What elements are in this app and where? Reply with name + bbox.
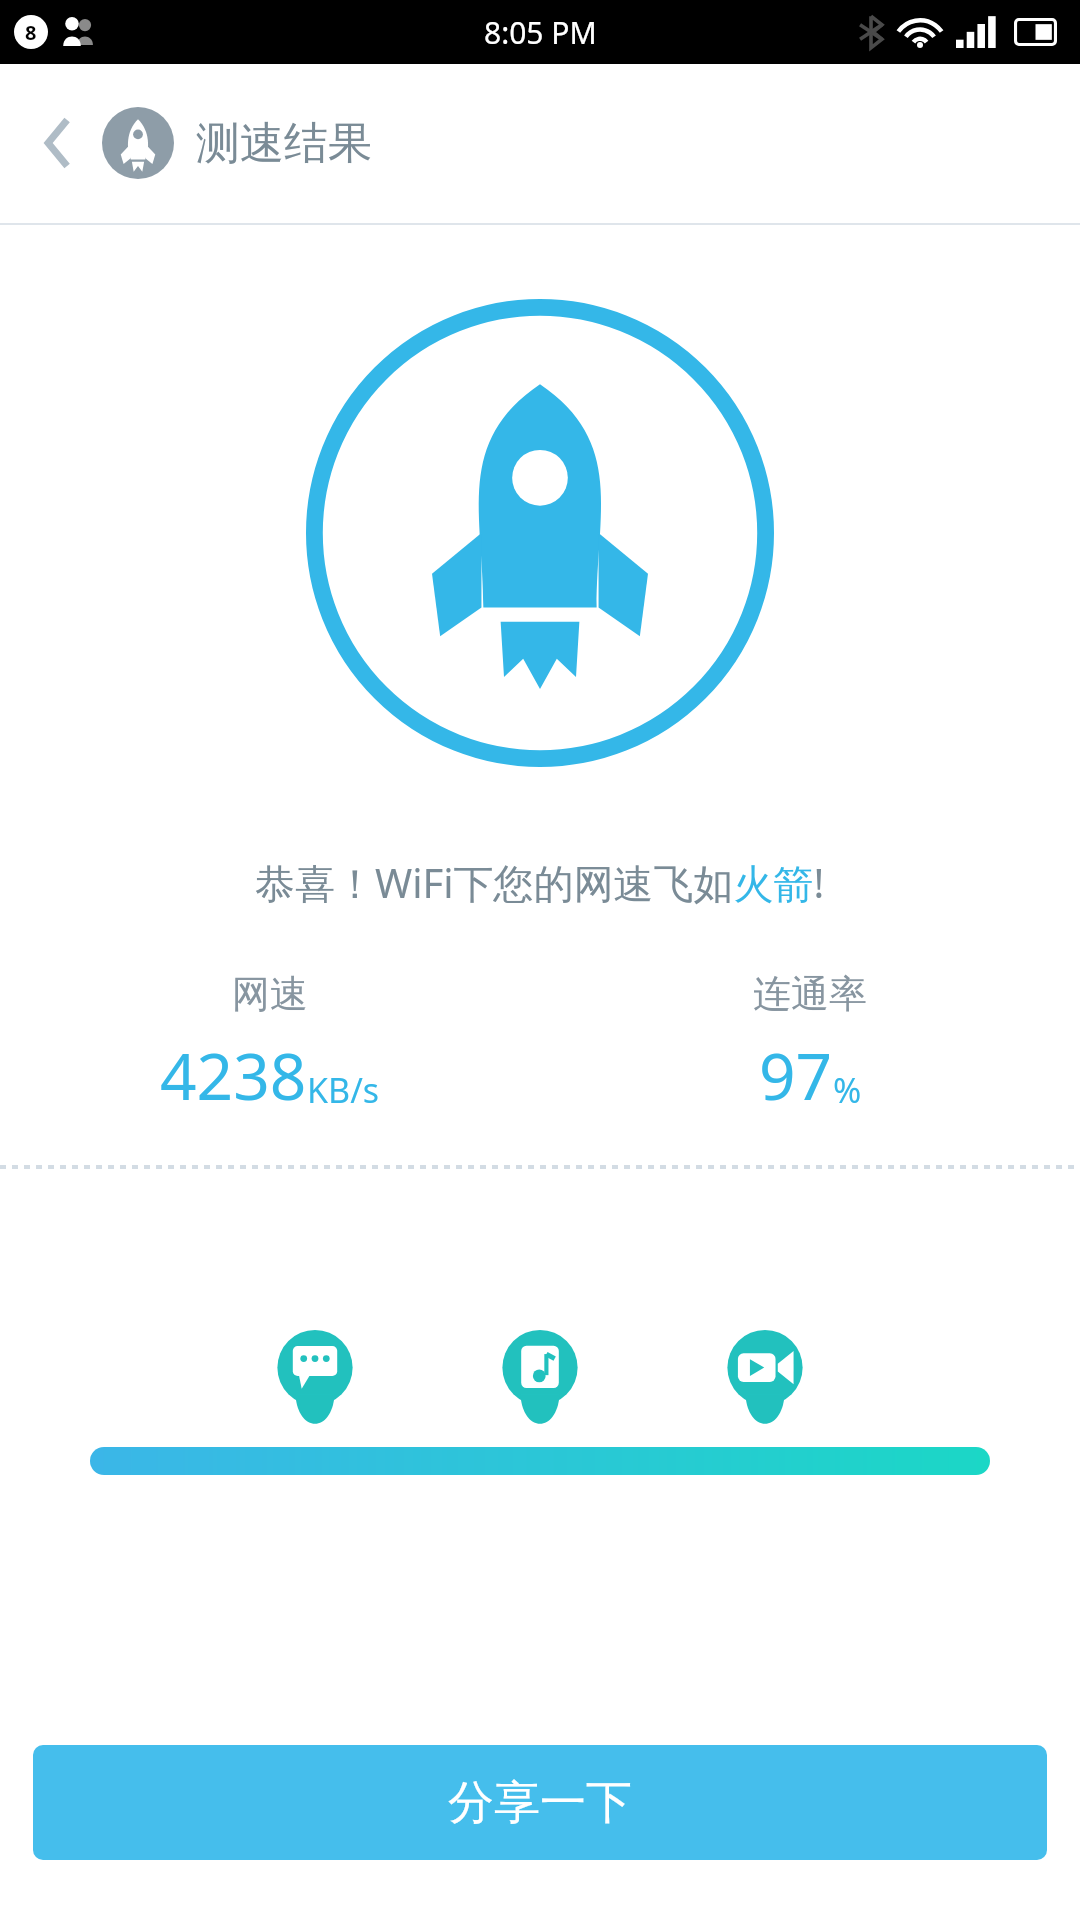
staticText: %: [833, 1067, 862, 1113]
staticText: 4238: [160, 1032, 307, 1119]
button[interactable]: Video speed: [708, 1325, 822, 1450]
staticText: 恭喜！WiFi下您的网速飞如火箭!: [255, 855, 825, 910]
button[interactable]: Music speed: [483, 1325, 597, 1450]
button[interactable]: Chat speed: [258, 1325, 372, 1450]
staticText: 测速结果: [196, 116, 372, 171]
button[interactable]: 分享一下: [33, 1745, 1047, 1860]
staticText: 8: [25, 19, 37, 46]
staticText: 8:05 PM: [484, 12, 597, 53]
staticText: KB/s: [307, 1067, 380, 1113]
staticText: 97: [759, 1032, 833, 1119]
button[interactable]: Back: [20, 105, 96, 181]
staticText: 连通率: [753, 970, 867, 1018]
staticText: 网速: [232, 970, 308, 1018]
staticText: 分享一下: [448, 1774, 632, 1832]
